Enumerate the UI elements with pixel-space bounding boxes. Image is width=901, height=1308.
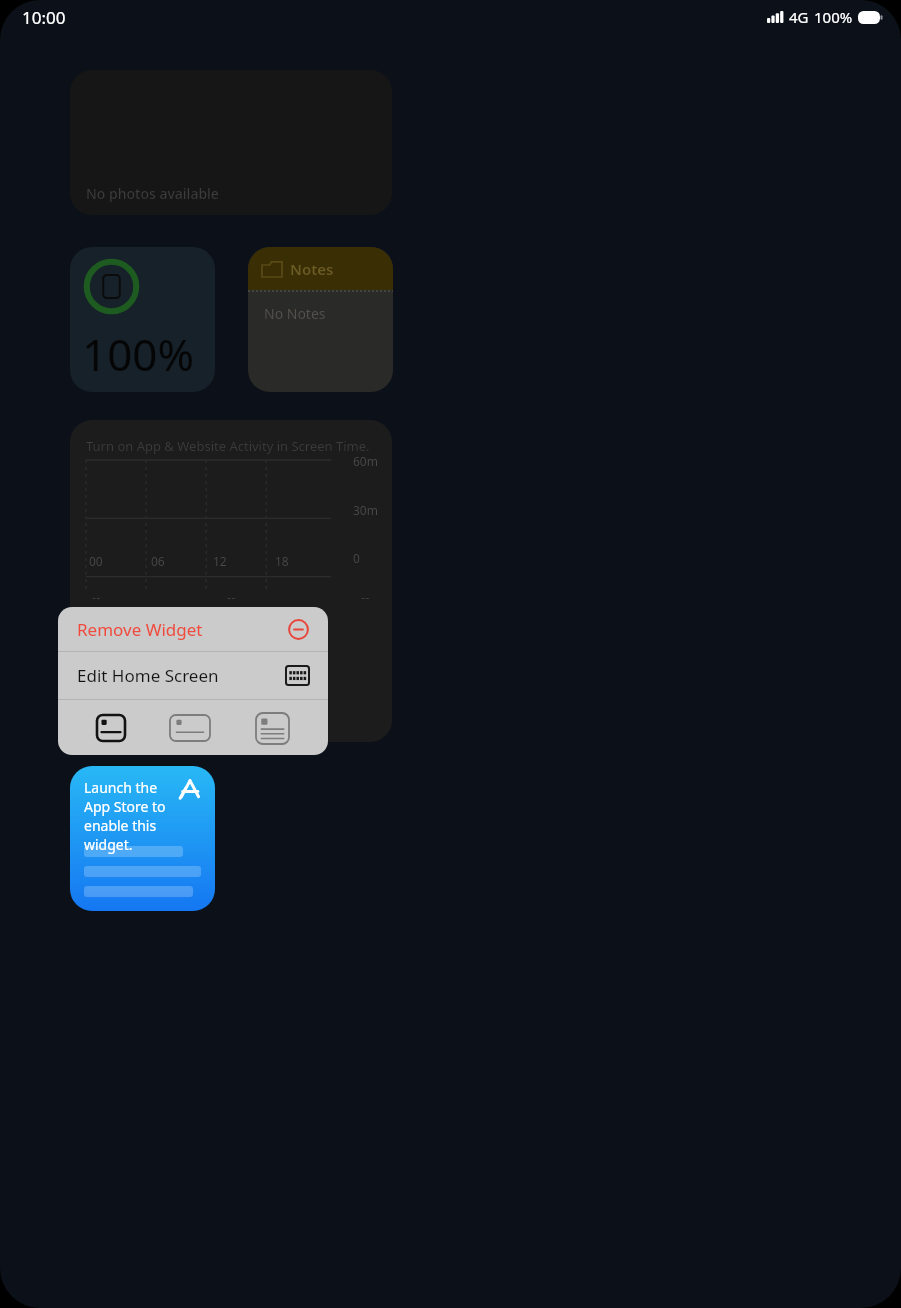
staticText: 10:00 (22, 6, 66, 29)
staticText: -- (361, 588, 370, 606)
button[interactable]: Small widget (88, 705, 134, 751)
staticText: 100% (814, 7, 853, 27)
staticText: -- (227, 588, 236, 606)
staticText: 06 (151, 553, 165, 569)
staticText: 4G (789, 7, 809, 27)
staticText: Notes (290, 259, 334, 279)
staticText: 00 (89, 553, 103, 569)
staticText: Turn on App & Website Activity in Screen… (86, 437, 370, 455)
other: App Store (177, 778, 203, 804)
staticText: Remove Widget (77, 618, 288, 641)
staticText: 18 (275, 553, 289, 569)
button[interactable]: Edit Home Screen (58, 652, 328, 699)
staticText: No Notes (264, 304, 326, 323)
staticText: No photos available (86, 184, 219, 203)
button[interactable]: Turn on App & Website Activity in Screen… (70, 420, 392, 742)
button[interactable]: No photos available (70, 70, 392, 215)
staticText: -- (92, 588, 101, 606)
staticText: 0 (353, 550, 360, 566)
button[interactable]: Medium widget (164, 702, 216, 754)
staticText: 60m (353, 453, 378, 469)
staticText: 100% (82, 324, 195, 384)
staticText: Launch the App Store to enable this widg… (84, 778, 166, 854)
button[interactable]: Large widget (246, 702, 298, 754)
button[interactable]: 100% (70, 247, 215, 392)
staticText: 30m (353, 502, 378, 518)
button[interactable]: Notes (248, 247, 393, 392)
staticText: 12 (213, 553, 227, 569)
button[interactable]: Remove Widget (58, 607, 328, 651)
staticText: Edit Home Screen (77, 664, 286, 687)
button[interactable]: Launch the App Store to enable this widg… (70, 766, 215, 911)
